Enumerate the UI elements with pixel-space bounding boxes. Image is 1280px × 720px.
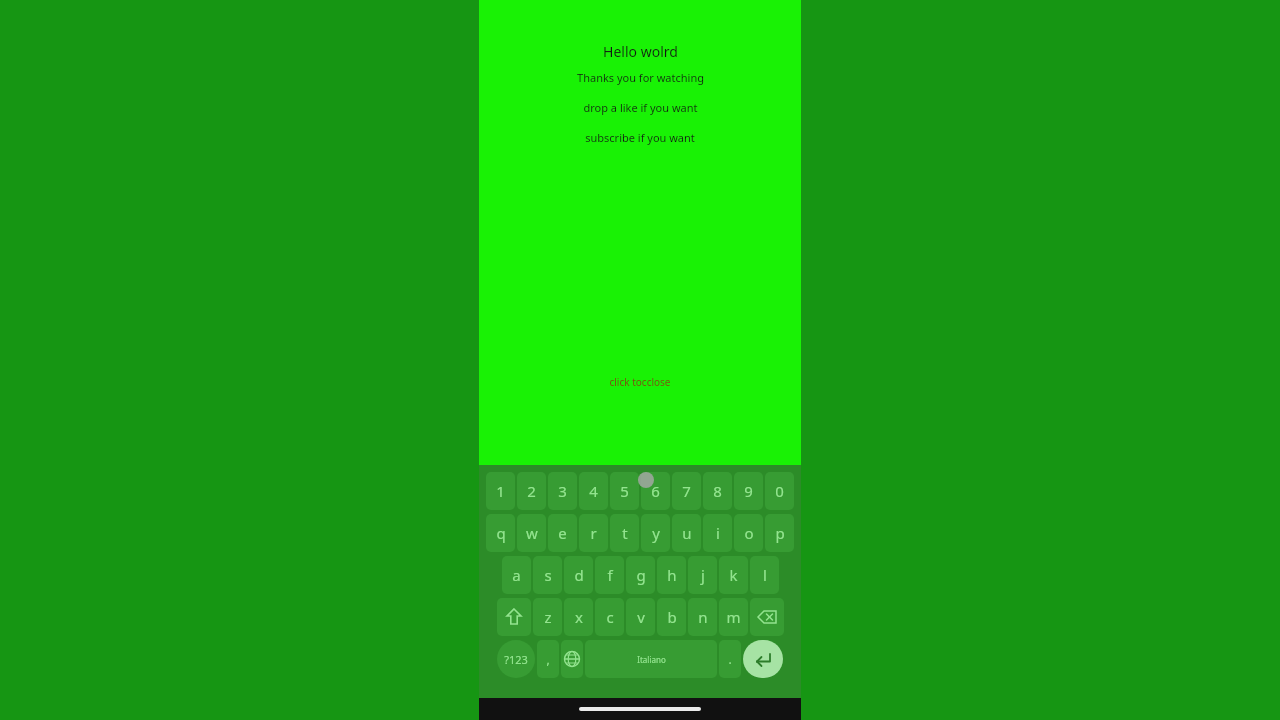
button[interactable]: t (610, 514, 639, 552)
button[interactable]: 5 (610, 472, 639, 510)
staticText: i (716, 523, 720, 543)
staticText: l (763, 565, 767, 585)
staticText: drop a like if you want (583, 100, 698, 115)
button[interactable]: Change language (561, 640, 583, 678)
staticText: ?123 (504, 652, 528, 667)
button[interactable]: m (719, 598, 748, 636)
staticText: click tocclose (609, 375, 671, 389)
staticText: k (729, 565, 738, 585)
button[interactable]: a (502, 556, 531, 594)
staticText: h (667, 565, 677, 585)
button[interactable]: u (672, 514, 701, 552)
staticText: . (728, 651, 732, 667)
staticText: t (622, 523, 628, 543)
button[interactable]: f (595, 556, 624, 594)
button[interactable]: ?123 (497, 640, 535, 678)
staticText: g (636, 565, 646, 585)
button[interactable]: j (688, 556, 717, 594)
staticText: r (590, 523, 597, 543)
button[interactable]: 1 (486, 472, 515, 510)
button[interactable]: q (486, 514, 515, 552)
button[interactable]: v (626, 598, 655, 636)
button[interactable]: p (765, 514, 794, 552)
staticText: 6 (651, 481, 660, 501)
button[interactable]: h (657, 556, 686, 594)
button[interactable]: . (719, 640, 741, 678)
button[interactable]: s (533, 556, 562, 594)
button[interactable]: c (595, 598, 624, 636)
button[interactable]: r (579, 514, 608, 552)
button[interactable]: Italiano (585, 640, 717, 678)
staticText: m (726, 607, 741, 627)
button[interactable]: click tocclose (607, 373, 673, 391)
button[interactable]: i (703, 514, 732, 552)
staticText: 8 (713, 481, 722, 501)
staticText: 5 (620, 481, 629, 501)
button[interactable]: Backspace (750, 598, 784, 636)
staticText: e (558, 523, 567, 543)
staticText: 1 (496, 481, 505, 501)
button[interactable]: z (533, 598, 562, 636)
button[interactable]: 3 (548, 472, 577, 510)
button[interactable]: 9 (734, 472, 763, 510)
button[interactable]: y (641, 514, 670, 552)
button[interactable]: x (564, 598, 593, 636)
button[interactable]: g (626, 556, 655, 594)
button[interactable]: Enter (743, 640, 783, 678)
staticText: j (701, 565, 705, 585)
staticText: Hello wolrd (603, 42, 678, 61)
staticText: 0 (775, 481, 784, 501)
button[interactable]: 8 (703, 472, 732, 510)
button[interactable]: 4 (579, 472, 608, 510)
staticText: s (544, 565, 552, 585)
staticText: p (775, 523, 785, 543)
button[interactable]: 6 (641, 472, 670, 510)
button[interactable]: w (517, 514, 546, 552)
button[interactable]: n (688, 598, 717, 636)
staticText: c (606, 607, 614, 627)
staticText: u (682, 523, 692, 543)
button[interactable]: b (657, 598, 686, 636)
button[interactable]: 2 (517, 472, 546, 510)
staticText: v (637, 607, 645, 627)
button[interactable]: 0 (765, 472, 794, 510)
staticText: 4 (589, 481, 598, 501)
staticText: q (496, 523, 506, 543)
button[interactable]: d (564, 556, 593, 594)
staticText: 2 (527, 481, 536, 501)
staticText: f (607, 565, 613, 585)
staticText: Italiano (637, 654, 666, 665)
staticText: 3 (558, 481, 567, 501)
staticText: w (526, 523, 538, 543)
button[interactable]: k (719, 556, 748, 594)
staticText: z (544, 607, 552, 627)
button[interactable]: e (548, 514, 577, 552)
button[interactable]: 7 (672, 472, 701, 510)
staticText: Thanks you for watching (577, 70, 704, 85)
staticText: , (546, 651, 550, 667)
button[interactable]: l (750, 556, 779, 594)
button[interactable]: Shift (497, 598, 531, 636)
staticText: subscribe if you want (585, 130, 695, 145)
staticText: b (667, 607, 677, 627)
button[interactable]: o (734, 514, 763, 552)
staticText: x (575, 607, 583, 627)
staticText: 7 (682, 481, 691, 501)
staticText: d (574, 565, 584, 585)
staticText: 9 (744, 481, 753, 501)
button[interactable]: , (537, 640, 559, 678)
staticText: y (652, 523, 660, 543)
staticText: a (512, 565, 521, 585)
staticText: o (744, 523, 754, 543)
staticText: n (698, 607, 708, 627)
